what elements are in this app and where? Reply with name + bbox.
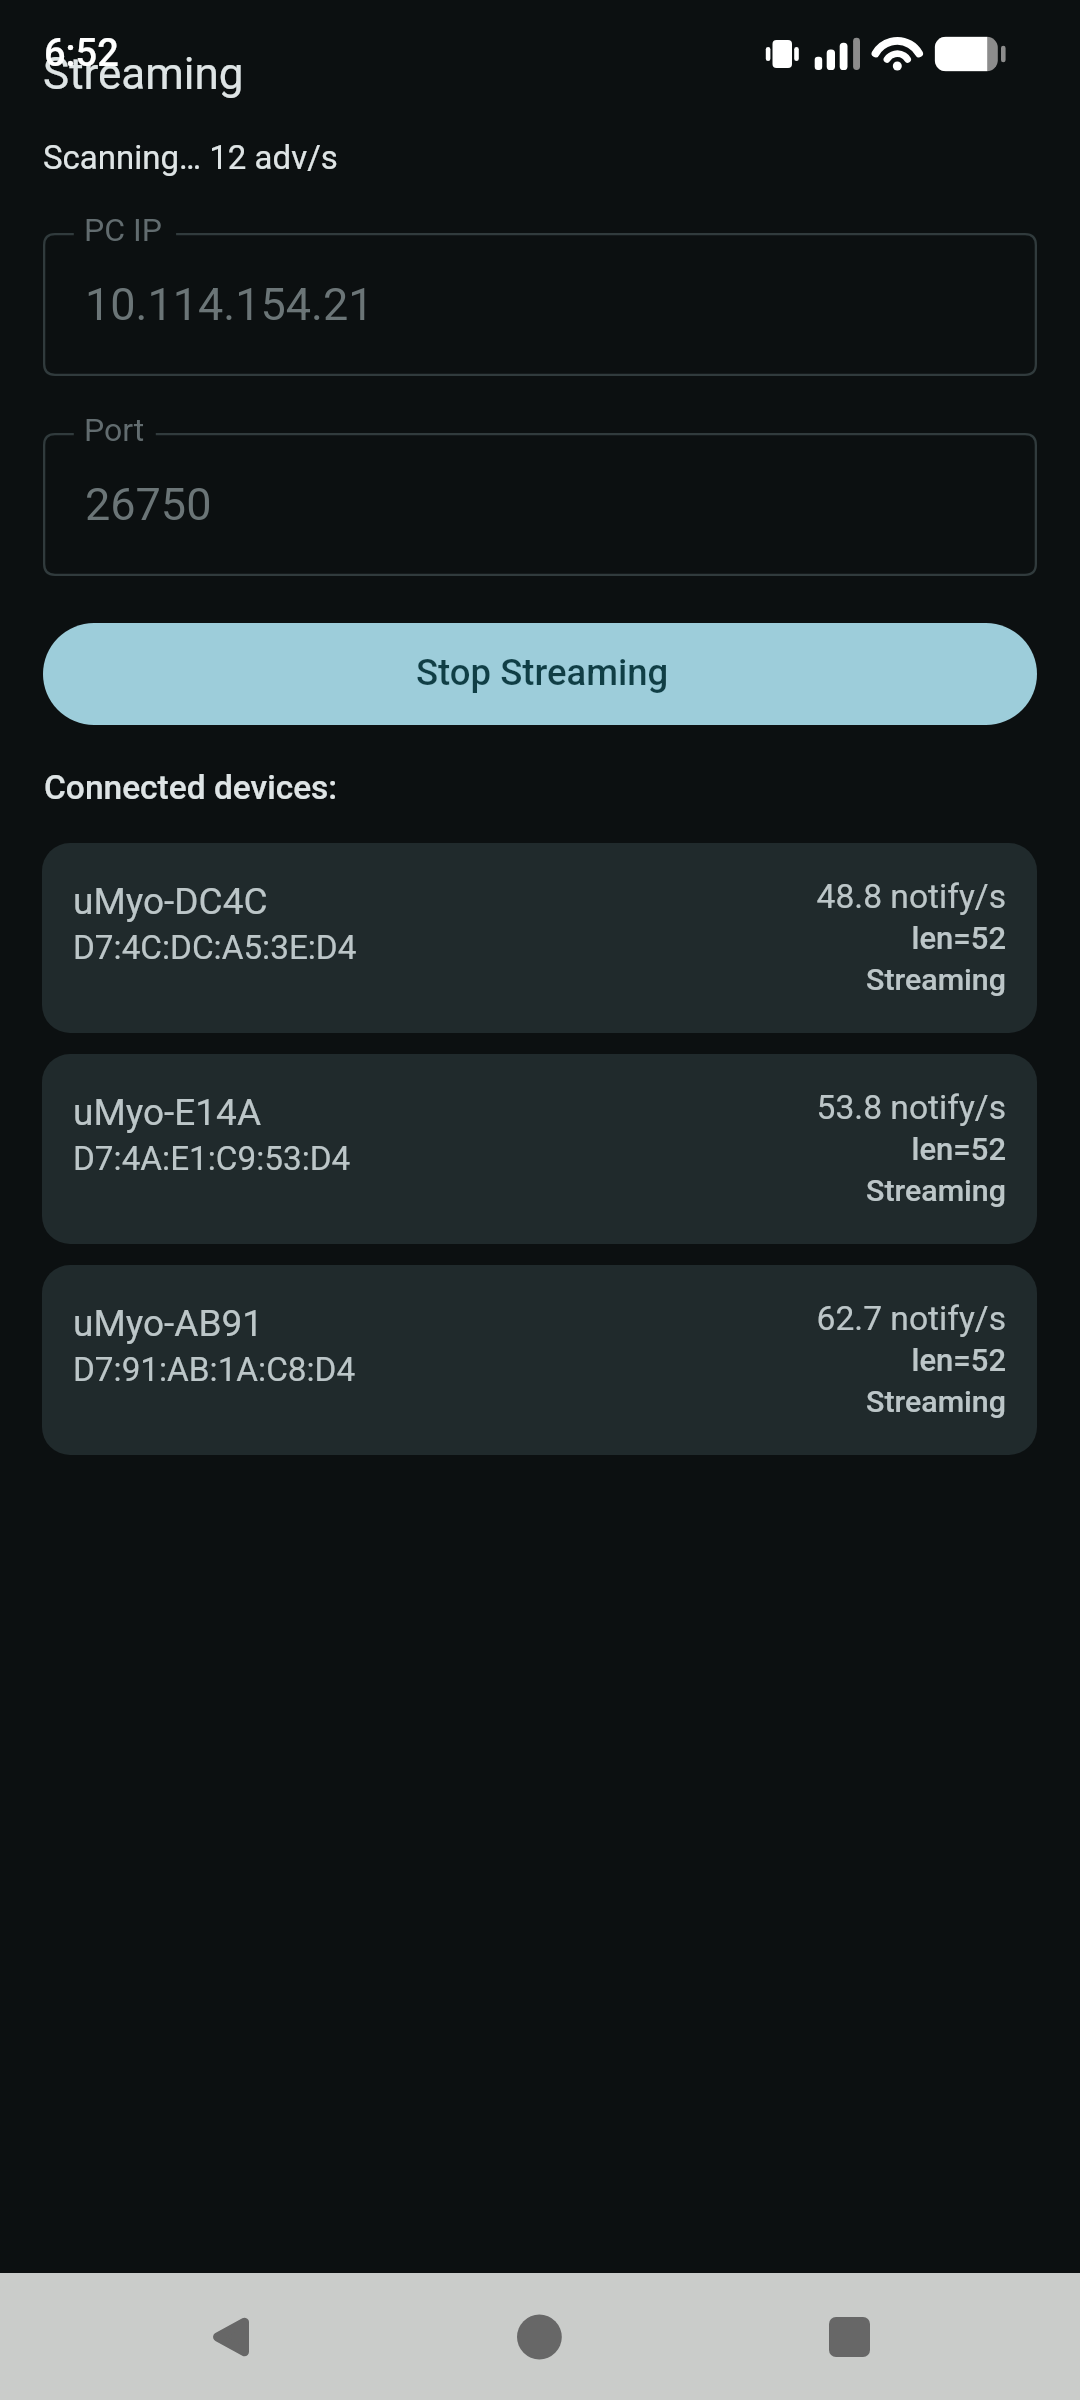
staticText: 53.8 notify/s xyxy=(816,1088,1006,1127)
staticText: len=52 xyxy=(911,1131,1006,1167)
staticText: 62.7 notify/s xyxy=(816,1299,1006,1338)
staticText: Streaming xyxy=(43,48,244,100)
staticText: Streaming xyxy=(865,1384,1006,1420)
button[interactable]: Stop Streaming xyxy=(43,623,1037,725)
staticText: Port xyxy=(84,411,145,449)
staticText: 26750 xyxy=(85,478,212,531)
button[interactable]: Port xyxy=(43,433,1037,576)
staticText: 48.8 notify/s xyxy=(816,877,1006,916)
staticText: uMyo-E14A xyxy=(73,1091,262,1134)
staticText: D7:91:AB:1A:C8:D4 xyxy=(73,1350,356,1389)
staticText: len=52 xyxy=(911,920,1006,956)
staticText: Stop Streaming xyxy=(416,651,669,694)
staticText: PC IP xyxy=(84,211,162,249)
button[interactable]: Recent apps xyxy=(750,2273,950,2400)
button[interactable]: Back xyxy=(129,2273,329,2400)
staticText: 10.114.154.21 xyxy=(85,278,374,331)
staticText: D7:4A:E1:C9:53:D4 xyxy=(73,1139,351,1178)
button[interactable]: uMyo-DC4C xyxy=(42,843,1037,1033)
staticText: 6:52 xyxy=(44,31,119,76)
staticText: Streaming xyxy=(865,1173,1006,1209)
button[interactable]: uMyo-AB91 xyxy=(42,1265,1037,1455)
staticText: len=52 xyxy=(911,1342,1006,1378)
button[interactable]: Home xyxy=(440,2273,640,2400)
staticText: D7:4C:DC:A5:3E:D4 xyxy=(73,928,357,967)
staticText: Streaming xyxy=(865,962,1006,998)
staticText: uMyo-DC4C xyxy=(73,880,268,923)
staticText: uMyo-AB91 xyxy=(73,1302,264,1345)
staticText: Connected devices: xyxy=(44,768,338,807)
staticText: Scanning… 12 adv/s xyxy=(43,138,338,177)
button[interactable]: uMyo-E14A xyxy=(42,1054,1037,1244)
button[interactable]: PC IP xyxy=(43,233,1037,376)
